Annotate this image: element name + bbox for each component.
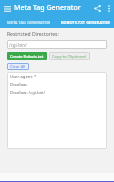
button[interactable]: Menu [0,0,14,16]
button[interactable]: More options [104,0,114,16]
staticText: Create Robots.txt [10,54,44,59]
button[interactable]: /cgi-bin/ [7,40,107,49]
button[interactable]: Clear All [7,63,29,70]
button[interactable]: Copy to Clipboard [49,52,90,60]
staticText: Meta Tag Generator [14,3,90,13]
button[interactable]: Create Robots.txt [7,52,47,60]
button[interactable]: User-agent: * [7,72,107,149]
button[interactable]: META TAG GENERATOR [0,16,57,28]
staticText: Disallow: /cgi-bin/ [10,90,45,96]
staticText: User-agent: * [10,74,37,80]
staticText: /cgi-bin/ [9,42,27,48]
staticText: Restricted Directories: [7,31,59,38]
staticText: ROBOTS.TXT GENERATOR [61,20,110,25]
button[interactable]: ROBOTS.TXT GENERATOR [57,16,114,28]
button[interactable]: Share [90,0,104,16]
staticText: Copy to Clipboard [52,54,87,59]
staticText: META TAG GENERATOR [7,20,51,25]
staticText: Disallow: [10,82,28,88]
staticText: Clear All [10,64,26,69]
